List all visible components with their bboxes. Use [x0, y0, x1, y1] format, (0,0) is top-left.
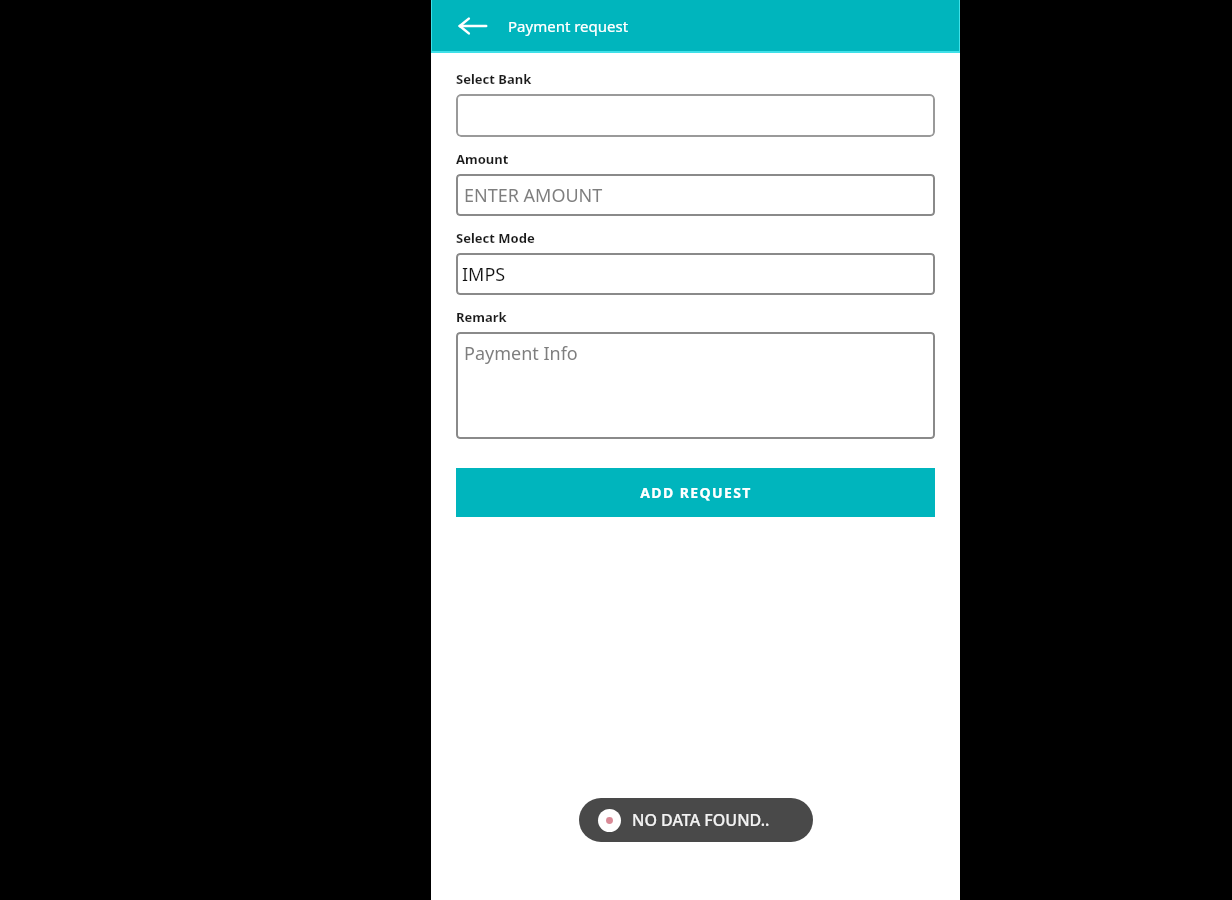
staticText: Payment Info: [464, 341, 578, 366]
staticText: Select Mode: [456, 229, 535, 247]
staticText: NO DATA FOUND..: [632, 809, 770, 831]
button[interactable]: Payment Info: [456, 332, 935, 439]
staticText: IMPS: [462, 262, 506, 287]
staticText: Select Bank: [456, 70, 532, 88]
button[interactable]: IMPS: [456, 253, 935, 295]
staticText: Amount: [456, 150, 509, 168]
button[interactable]: ADD REQUEST: [456, 468, 935, 517]
button[interactable]: Back: [456, 9, 490, 43]
button[interactable]: Select Bank: [456, 94, 935, 137]
button[interactable]: ENTER AMOUNT: [456, 174, 935, 216]
staticText: ADD REQUEST: [640, 483, 752, 502]
staticText: Payment request: [508, 16, 629, 36]
staticText: Remark: [456, 308, 507, 326]
staticText: ENTER AMOUNT: [464, 183, 603, 208]
